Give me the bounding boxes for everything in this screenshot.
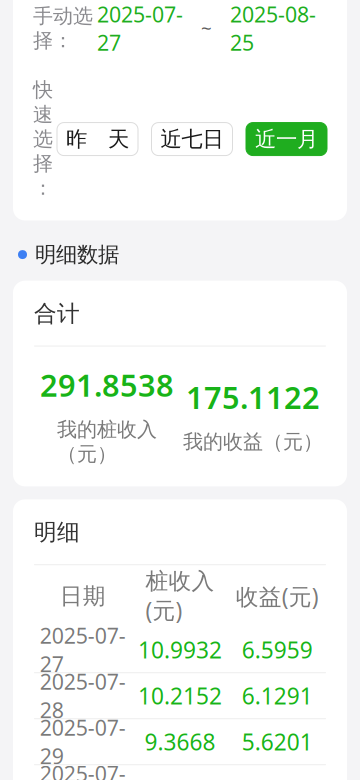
staticText: 明细 <box>34 518 80 546</box>
staticText: ~ <box>201 16 212 41</box>
staticText: 2025-07-29 <box>40 713 126 770</box>
staticText: 175.1122 <box>186 377 320 417</box>
button[interactable]: 2025-07-27 <box>34 627 326 672</box>
staticText: 桩收入(元) <box>145 567 214 625</box>
staticText: 10.2152 <box>138 681 222 711</box>
button[interactable]: 2025-07-30 <box>34 765 326 780</box>
staticText: 6.1291 <box>242 681 313 711</box>
button[interactable]: 2025-07-27 <box>93 0 187 60</box>
button[interactable]: 2025-07-28 <box>34 673 326 718</box>
staticText: 昨 天 <box>66 126 129 152</box>
staticText: 2025-07-27 <box>97 0 183 57</box>
staticText: 快速选择： <box>33 78 53 200</box>
staticText: 日期 <box>60 582 106 610</box>
button[interactable]: 昨 天 <box>57 123 138 156</box>
staticText: 我的收益（元） <box>183 429 323 454</box>
staticText: 明细数据 <box>35 241 119 268</box>
staticText: 2025-08-25 <box>230 0 316 57</box>
staticText: 我的桩收入（元） <box>57 417 157 466</box>
button[interactable]: 近一月 <box>246 123 327 156</box>
staticText: 合计 <box>34 300 80 327</box>
staticText: 收益(元) <box>236 581 319 611</box>
staticText: 9.3668 <box>144 727 215 757</box>
staticText: 近一月 <box>255 126 318 152</box>
button[interactable]: 2025-07-29 <box>34 719 326 764</box>
staticText: 291.8538 <box>40 364 174 405</box>
button[interactable]: 2025-08-25 <box>226 0 320 60</box>
staticText: 近七日 <box>160 126 223 152</box>
staticText: 2025-07-27 <box>40 621 126 678</box>
staticText: 10.9932 <box>138 635 222 665</box>
staticText: 5.6201 <box>242 727 313 757</box>
staticText: 6.5959 <box>242 635 313 665</box>
button[interactable]: 近七日 <box>151 123 232 156</box>
staticText: 手动选择： <box>33 4 93 53</box>
staticText: 2025-07-30 <box>40 759 126 780</box>
staticText: 2025-07-28 <box>40 667 126 724</box>
